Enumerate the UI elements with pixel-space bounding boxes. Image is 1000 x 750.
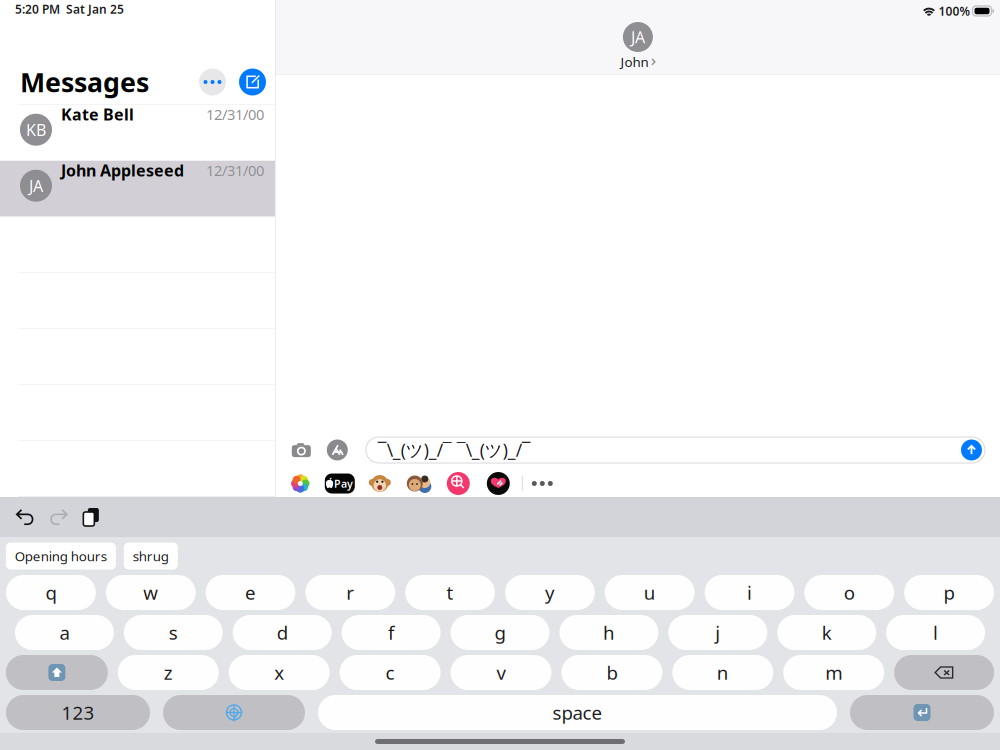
button[interactable]: e [206,575,295,610]
button[interactable]: JA [620,22,655,74]
button[interactable]: p [904,575,994,610]
button[interactable]: Apps [327,439,348,460]
staticText: x [274,660,284,685]
button[interactable]: d [233,615,332,650]
staticText: b [606,660,617,685]
staticText: JA [29,175,43,196]
button[interactable]: a [15,615,114,650]
button[interactable]: Emoji [371,475,389,492]
staticText: shrug [133,547,169,565]
button[interactable]: Photos [292,475,309,492]
staticText: h [603,620,615,645]
button[interactable]: Shift [6,655,108,690]
button[interactable]: Delete [894,655,994,690]
staticText: 123 [61,700,94,725]
button[interactable]: More [199,68,226,95]
staticText: f [388,620,394,645]
staticText: d [277,620,288,645]
button[interactable]: u [605,575,695,610]
staticText: 12/31/00 [206,105,264,124]
staticText: JA [631,26,645,48]
staticText: y [545,580,555,605]
button[interactable]: Undo [16,507,35,526]
button[interactable]: x [229,655,330,690]
button[interactable]: Paste [82,507,100,527]
staticText: 12/31/00 [206,161,264,180]
button[interactable]: Next keyboard [163,695,305,730]
staticText: w [143,580,158,605]
button[interactable]: shrug [124,542,178,569]
button[interactable]: c [340,655,441,690]
button[interactable]: More apps [532,481,553,486]
staticText: z [164,660,173,685]
staticText: u [644,580,656,605]
button[interactable]: Send [961,439,982,460]
button[interactable]: i [705,575,794,610]
button[interactable]: m [783,655,884,690]
button[interactable]: l [886,615,985,650]
button[interactable]: g [451,615,549,650]
staticText: k [822,620,832,645]
staticText: a [59,620,69,645]
button[interactable]: q [6,575,96,610]
button[interactable]: v [451,655,551,690]
staticText: ¯\_(ツ)_/¯ ¯\_(ツ)_/¯ [378,438,531,461]
staticText: o [844,580,855,605]
button[interactable]: k [777,615,876,650]
button[interactable]: j [668,615,767,650]
staticText: i [747,580,752,605]
button[interactable]: New Message [239,68,266,95]
staticText: space [552,700,602,725]
button[interactable]: n [672,655,773,690]
button[interactable]: Apple Pay [325,473,355,493]
staticText: John Appleseed [61,160,184,181]
staticText: e [245,580,256,605]
button[interactable]: JA [0,161,275,217]
button[interactable]: t [405,575,495,610]
button[interactable]: o [804,575,894,610]
staticText: j [715,620,720,645]
staticText: q [45,580,56,605]
staticText: Opening hours [15,547,107,565]
button[interactable]: KB [0,105,275,161]
staticText: t [447,580,454,605]
staticText: Sat Jan 25 [66,1,124,17]
button[interactable]: space [318,695,837,730]
staticText: n [717,660,729,685]
button[interactable]: s [124,615,223,650]
button[interactable]: f [342,615,441,650]
button[interactable]: Redo [49,507,68,526]
staticText: r [346,580,354,605]
button[interactable]: h [559,615,658,650]
button[interactable]: 123 [6,695,150,730]
staticText: 5:20 PM [15,1,60,17]
button[interactable]: Camera [292,442,311,457]
staticText: 100% [938,3,970,19]
button[interactable]: y [505,575,595,610]
staticText: Pay [334,476,353,491]
staticText: m [825,660,842,685]
staticText: v [496,660,505,685]
button[interactable]: w [106,575,196,610]
staticText: l [933,620,938,645]
button[interactable]: z [118,655,219,690]
staticText: Kate Bell [61,104,134,125]
button[interactable]: Memoji [406,474,430,492]
button[interactable]: Fitness [487,472,510,495]
staticText: g [494,620,505,645]
button[interactable]: r [305,575,395,610]
staticText: s [169,620,178,645]
button[interactable]: Search GIFs [447,472,470,495]
button[interactable]: Opening hours [6,542,116,569]
staticText: c [386,660,395,685]
button[interactable]: b [561,655,662,690]
button[interactable]: Return [850,695,994,730]
staticText: John [620,53,648,71]
staticText: KB [26,119,46,140]
staticText: Messages [20,64,149,100]
staticText: p [944,580,955,605]
